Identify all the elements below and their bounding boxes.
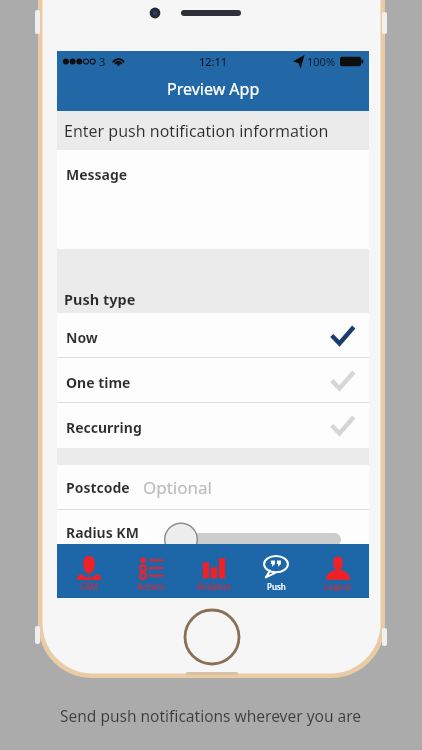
button[interactable]: Reccurring <box>57 403 369 448</box>
staticText: Optional <box>143 476 212 499</box>
staticText: Message <box>66 165 128 184</box>
staticText: One time <box>66 373 344 392</box>
button[interactable]: Analytics <box>183 544 245 598</box>
staticText: Reccurring <box>66 418 344 437</box>
staticText: 12:11 <box>57 54 369 69</box>
button[interactable]: Now <box>57 313 369 357</box>
button[interactable]: Actions <box>120 544 183 598</box>
staticText: Analytics <box>197 581 232 592</box>
staticText: Preview App <box>167 78 260 100</box>
button[interactable]: Logout <box>307 544 369 598</box>
staticText: 3 <box>99 54 106 69</box>
button[interactable]: CRM <box>57 544 120 598</box>
staticText: Postcode <box>66 478 130 497</box>
staticText: Radius KM <box>66 523 139 542</box>
staticText: 100% <box>307 54 336 69</box>
button[interactable]: One time <box>57 358 369 402</box>
staticText: Enter push notification information <box>64 120 329 142</box>
staticText: Push <box>267 581 286 592</box>
staticText: Logout <box>324 581 352 592</box>
button[interactable]: Push <box>245 544 307 598</box>
button[interactable]: Postcode <box>57 465 369 509</box>
staticText: Send push notifications wherever you are <box>60 705 362 726</box>
staticText: Push type <box>64 289 136 309</box>
staticText: CRM <box>80 581 98 592</box>
staticText: Actions <box>137 581 166 592</box>
staticText: Now <box>66 328 344 347</box>
